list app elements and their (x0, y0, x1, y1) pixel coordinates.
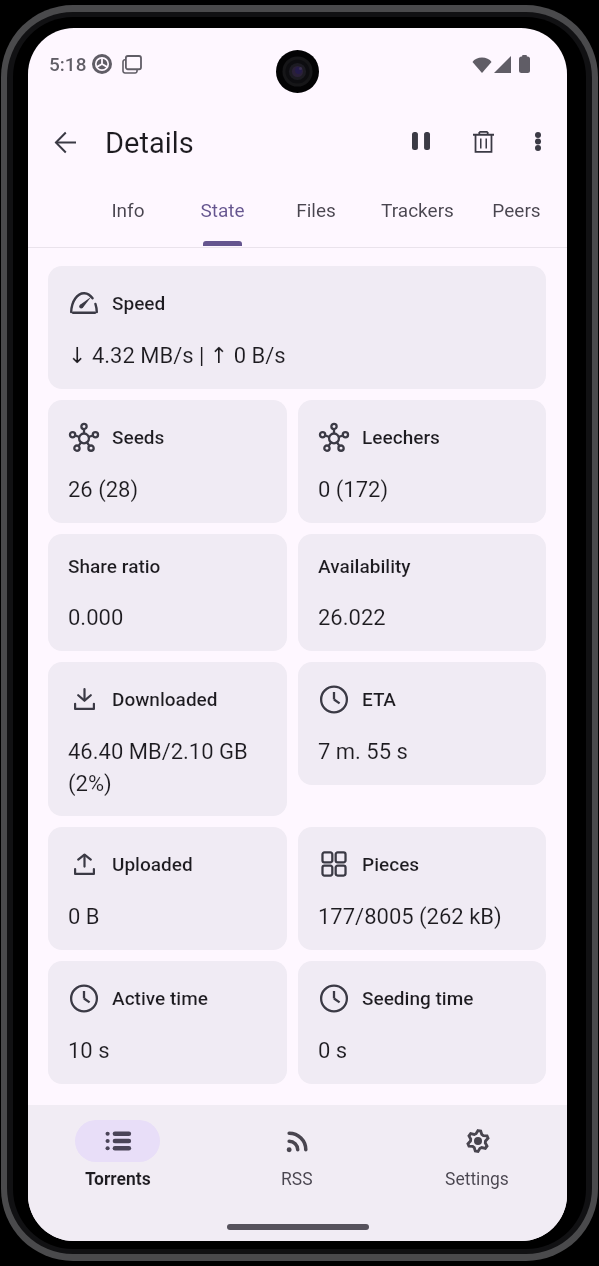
staticText: Trackers (381, 199, 454, 221)
button[interactable]: Trackers (373, 181, 461, 247)
staticText: Downloaded (112, 688, 218, 710)
staticText: Active time (112, 987, 208, 1009)
button[interactable]: Share ratio (48, 534, 287, 651)
staticText: State (200, 199, 245, 221)
button[interactable]: Seeds (48, 400, 287, 523)
staticText: 26.022 (318, 605, 386, 631)
staticText: 26 (28) (68, 477, 139, 503)
button[interactable]: State (194, 181, 250, 247)
staticText: 177/8005 (262 kB) (318, 904, 502, 930)
staticText: Seeds (112, 426, 165, 448)
button[interactable]: RSS (207, 1105, 387, 1190)
staticText: 0.000 (68, 605, 124, 631)
staticText: 0 s (318, 1038, 348, 1064)
button[interactable]: Downloaded (48, 662, 287, 816)
button[interactable]: Torrents (28, 1105, 207, 1190)
staticText: Torrents (85, 1169, 151, 1190)
button[interactable]: More options (514, 119, 562, 167)
staticText: ETA (362, 688, 397, 710)
button[interactable]: Files (288, 181, 344, 247)
staticText: Availability (318, 555, 411, 577)
staticText: 46.40 MB/2.10 GB (2%) (68, 739, 248, 796)
staticText: Share ratio (68, 555, 161, 577)
staticText: 0 (172) (318, 477, 389, 503)
staticText: Files (296, 199, 336, 221)
staticText: 10 s (68, 1038, 110, 1064)
staticText: 5:18 (49, 53, 87, 75)
button[interactable]: Speed (48, 266, 546, 389)
staticText: 0 B (68, 904, 100, 930)
button[interactable]: Peers (485, 181, 547, 247)
button[interactable]: Active time (48, 961, 287, 1084)
staticText: RSS (281, 1169, 313, 1190)
staticText: Pieces (362, 853, 420, 875)
button[interactable]: Leechers (298, 400, 546, 523)
button[interactable]: Availability (298, 534, 546, 651)
button[interactable]: Back (39, 117, 91, 169)
staticText: Seeding time (362, 987, 474, 1009)
staticText: Leechers (362, 426, 440, 448)
staticText: Speed (112, 292, 166, 314)
staticText: Settings (445, 1169, 509, 1190)
button[interactable]: Info (100, 181, 156, 247)
staticText: Details (105, 126, 194, 160)
staticText: ↓ 4.32 MB/s | ↑ 0 B/s (68, 343, 286, 369)
button[interactable]: Pieces (298, 827, 546, 950)
staticText: Peers (492, 199, 541, 221)
button[interactable]: Pause (396, 118, 446, 168)
button[interactable]: Delete (458, 118, 508, 168)
button[interactable]: ETA (298, 662, 546, 785)
staticText: Uploaded (112, 853, 193, 875)
button[interactable]: Uploaded (48, 827, 287, 950)
staticText: Info (111, 199, 145, 221)
button[interactable]: Seeding time (298, 961, 546, 1084)
staticText: 7 m. 55 s (318, 739, 408, 765)
button[interactable]: Settings (387, 1105, 567, 1190)
